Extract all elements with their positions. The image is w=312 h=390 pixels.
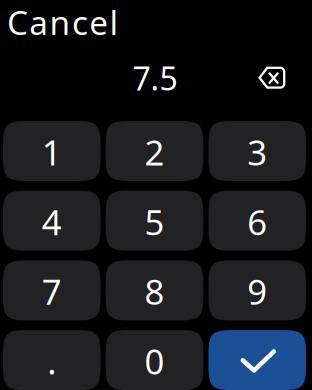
- staticText: Cancel: [7, 0, 118, 44]
- button[interactable]: 8: [106, 260, 203, 320]
- button[interactable]: 6: [208, 191, 306, 251]
- button[interactable]: 7: [3, 260, 100, 320]
- button[interactable]: 4: [3, 191, 100, 251]
- staticText: 3: [247, 129, 267, 175]
- button[interactable]: 0: [106, 330, 203, 390]
- button[interactable]: Confirm: [208, 330, 306, 390]
- staticText: 7.5: [132, 57, 177, 99]
- staticText: 0: [144, 338, 164, 384]
- button[interactable]: .: [3, 330, 100, 390]
- staticText: 4: [42, 199, 62, 245]
- staticText: .: [47, 338, 56, 384]
- button[interactable]: Cancel: [7, 5, 187, 39]
- staticText: 1: [42, 129, 62, 175]
- staticText: 8: [144, 268, 164, 314]
- button[interactable]: Delete: [257, 65, 287, 90]
- button[interactable]: 5: [106, 191, 203, 251]
- staticText: 2: [144, 129, 164, 175]
- button[interactable]: 3: [208, 121, 306, 181]
- staticText: 5: [144, 199, 164, 245]
- button[interactable]: 9: [208, 260, 306, 320]
- button[interactable]: 1: [3, 121, 100, 181]
- staticText: 9: [247, 268, 267, 314]
- button[interactable]: 2: [106, 121, 203, 181]
- staticText: 7: [42, 268, 62, 314]
- staticText: 6: [247, 199, 267, 245]
